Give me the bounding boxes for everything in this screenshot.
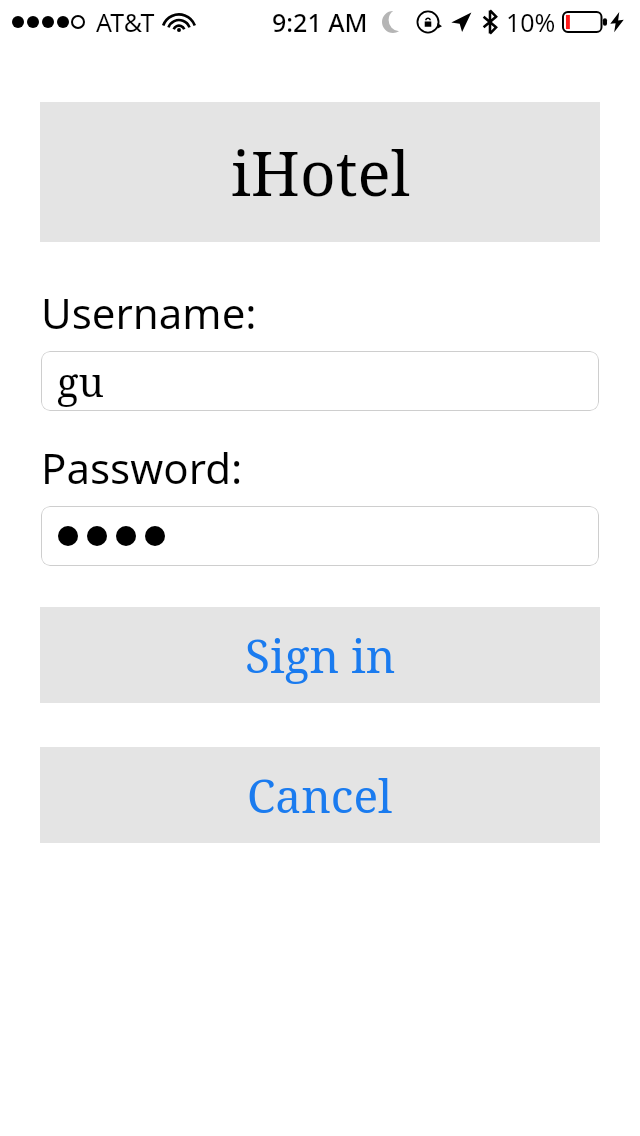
staticText: Cancel bbox=[247, 764, 393, 827]
staticText: gu bbox=[57, 354, 104, 408]
staticText: iHotel bbox=[231, 130, 410, 214]
staticText: Sign in bbox=[245, 624, 396, 687]
staticText: 9:21 AM bbox=[272, 5, 368, 39]
staticText: 10% bbox=[506, 5, 556, 39]
button[interactable] bbox=[41, 506, 599, 566]
staticText: Password: bbox=[41, 439, 243, 496]
staticText: AT&T bbox=[96, 5, 155, 39]
button[interactable]: Cancel bbox=[40, 747, 600, 843]
button[interactable]: Sign in bbox=[40, 607, 600, 703]
staticText: Username: bbox=[41, 284, 257, 341]
button[interactable]: gu bbox=[41, 351, 599, 411]
